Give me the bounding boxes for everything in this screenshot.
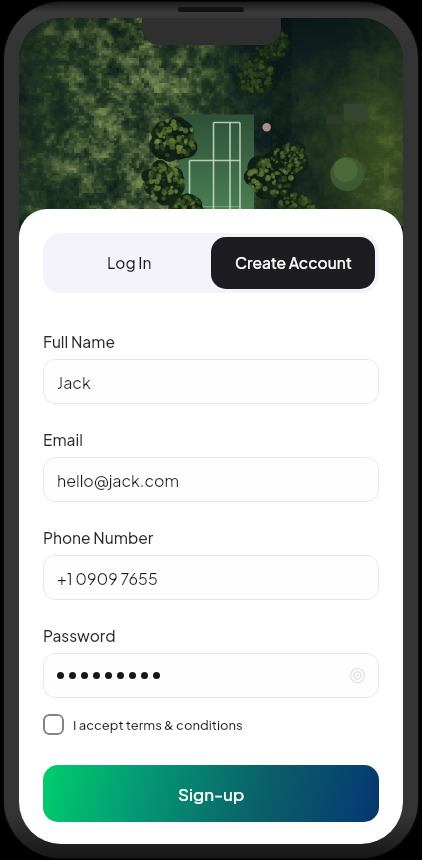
- button[interactable]: hello@jack.com: [43, 457, 379, 502]
- button[interactable]: Show password: [57, 668, 365, 683]
- staticText: I accept terms & conditions: [73, 717, 243, 733]
- button[interactable]: Log In: [47, 237, 211, 289]
- staticText: Log In: [107, 253, 152, 273]
- staticText: Email: [43, 430, 83, 450]
- button[interactable]: Create Account: [211, 237, 375, 289]
- staticText: hello@jack.com: [57, 470, 180, 490]
- button[interactable]: Sign-up: [43, 765, 379, 822]
- staticText: Phone Number: [43, 528, 154, 548]
- button[interactable]: +1 0909 7655: [43, 555, 379, 600]
- staticText: Password: [43, 626, 116, 646]
- staticText: +1 0909 7655: [57, 568, 158, 588]
- button[interactable]: Show password: [43, 653, 379, 698]
- button[interactable]: Jack: [43, 359, 379, 404]
- button[interactable]: I accept terms & conditions: [43, 714, 243, 735]
- staticText: Sign-up: [178, 783, 245, 804]
- staticText: Jack: [57, 372, 91, 392]
- staticText: Create Account: [235, 253, 352, 273]
- staticText: Full Name: [43, 332, 115, 352]
